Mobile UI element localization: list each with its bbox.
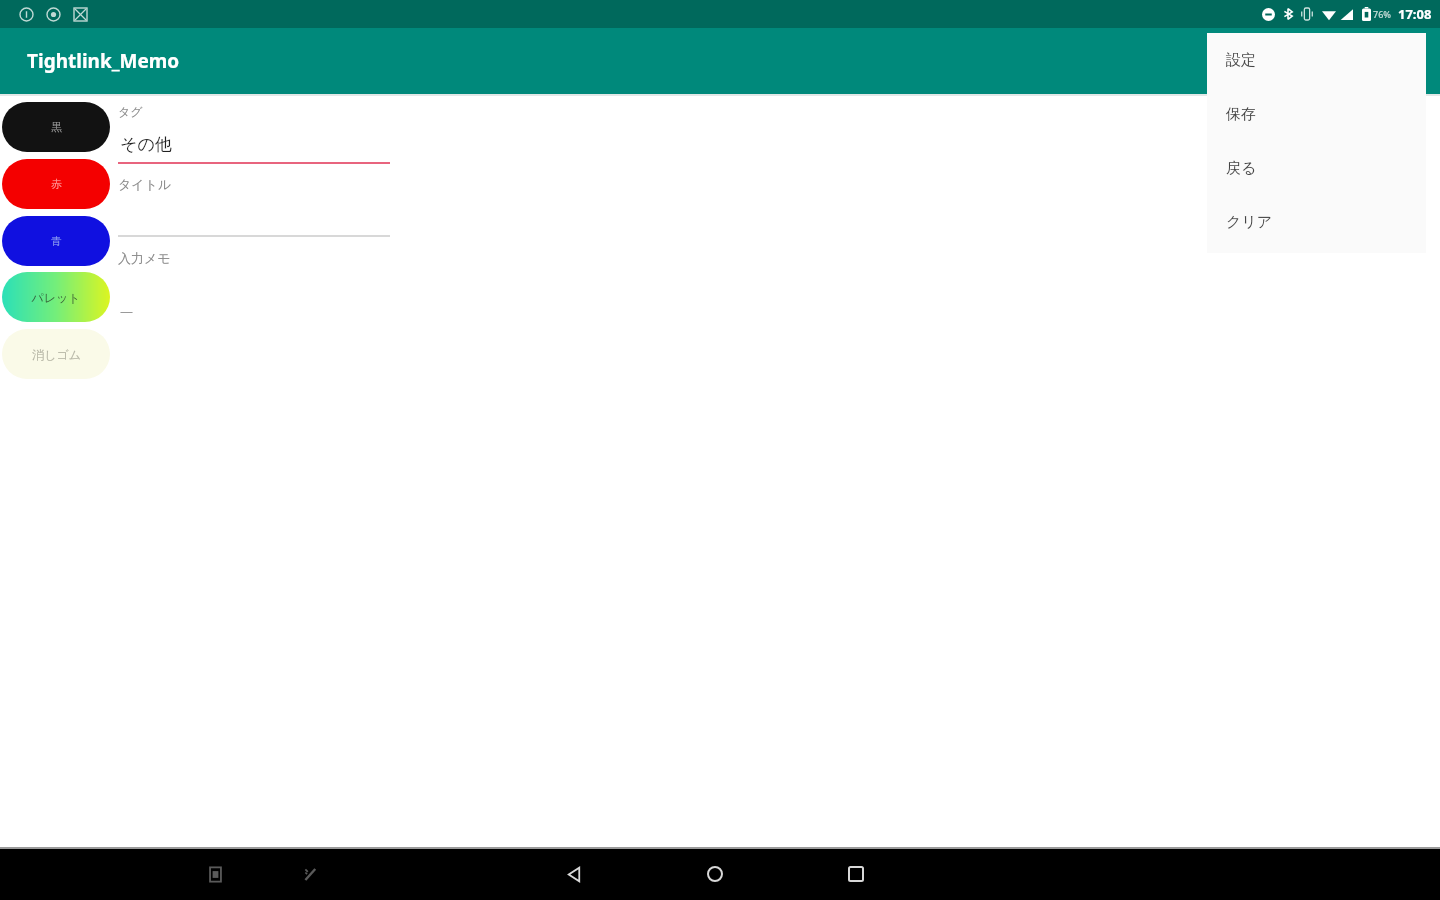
button[interactable]: 消しゴム	[2, 329, 110, 379]
button[interactable]: 戻る	[1207, 141, 1426, 195]
staticText: 戻る	[1226, 159, 1257, 178]
button[interactable]: パレット	[2, 272, 110, 322]
staticText: クリア	[1226, 213, 1273, 232]
staticText: —	[120, 302, 134, 320]
button[interactable]: 赤	[2, 159, 110, 209]
staticText: 76%	[1373, 8, 1391, 20]
staticText: 青	[51, 234, 62, 248]
staticText: パレット	[31, 290, 81, 305]
button[interactable]: 青	[2, 216, 110, 266]
button[interactable]: クリア	[1207, 195, 1426, 249]
staticText: 17:08	[1398, 5, 1432, 23]
button[interactable]: 設定	[1207, 33, 1426, 87]
button[interactable]: Back	[554, 854, 594, 894]
button[interactable]: Home	[695, 854, 735, 894]
staticText: 保存	[1226, 105, 1256, 124]
staticText: 黒	[51, 120, 62, 134]
staticText: 入力メモ	[118, 250, 171, 266]
staticText: タグ	[118, 104, 143, 119]
staticText: Tightlink_Memo	[27, 48, 180, 74]
button[interactable]: Screenshot	[196, 855, 234, 893]
staticText: その他	[120, 134, 172, 155]
staticText: タイトル	[118, 176, 172, 192]
button[interactable]: Recent apps	[836, 854, 876, 894]
button[interactable]: 保存	[1207, 87, 1426, 141]
button[interactable]: 黒	[2, 102, 110, 152]
staticText: 赤	[51, 177, 62, 191]
button[interactable]: Edit	[291, 855, 329, 893]
staticText: 設定	[1226, 51, 1256, 70]
staticText: 消しゴム	[32, 347, 81, 362]
